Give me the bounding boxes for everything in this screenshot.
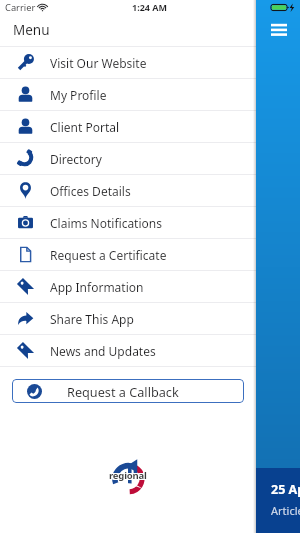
staticText: Carrier: [5, 1, 36, 14]
staticText: regional: [108, 468, 146, 481]
staticText: Request a Certificate: [50, 247, 167, 263]
staticText: regional: [110, 468, 148, 481]
button[interactable]: Claims Notifications: [0, 207, 256, 238]
staticText: Directory: [50, 151, 102, 167]
staticText: regional: [109, 469, 147, 482]
staticText: Claims Notifications: [50, 215, 162, 231]
button[interactable]: Open menu: [271, 18, 291, 36]
staticText: Offices Details: [50, 183, 131, 199]
button[interactable]: Request a Callback: [12, 379, 244, 403]
button[interactable]: Offices Details: [0, 175, 256, 206]
button[interactable]: My Profile: [0, 79, 256, 110]
staticText: Menu: [13, 21, 50, 39]
staticText: regional: [109, 468, 147, 481]
staticText: regional: [110, 470, 148, 483]
button[interactable]: Directory: [0, 143, 256, 174]
staticText: Article headline: [271, 503, 300, 518]
staticText: Share This App: [50, 311, 134, 327]
staticText: regional: [110, 469, 148, 482]
staticText: regional: [108, 469, 146, 482]
staticText: News and Updates: [50, 343, 156, 359]
staticText: regional: [108, 470, 146, 483]
staticText: Client Portal: [50, 119, 120, 135]
staticText: My Profile: [50, 87, 107, 103]
staticText: Visit Our Website: [50, 55, 147, 71]
button[interactable]: News and Updates: [0, 335, 256, 366]
button[interactable]: Share This App: [0, 303, 256, 334]
staticText: 25 April 2019: [271, 481, 300, 498]
staticText: Request a Callback: [67, 383, 179, 400]
button[interactable]: App Information: [0, 271, 256, 302]
button[interactable]: Client Portal: [0, 111, 256, 142]
staticText: regional: [109, 470, 147, 483]
button[interactable]: Request a Certificate: [0, 239, 256, 270]
staticText: 1:24 AM: [132, 1, 168, 13]
button[interactable]: Visit Our Website: [0, 47, 256, 78]
staticText: App Information: [50, 279, 144, 295]
